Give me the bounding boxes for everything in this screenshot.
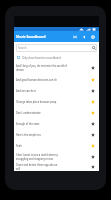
button[interactable]: Shuffle: [70, 31, 79, 42]
staticText: And good human decisions can ch: [16, 78, 89, 81]
staticText: I hate and detest these app ads an will: [16, 163, 89, 171]
button[interactable]: Yeah: [14, 140, 99, 151]
staticText: Only show favorites soundboard: [22, 56, 61, 59]
button[interactable]: Settings: [88, 31, 97, 42]
button[interactable]: Don't underestimate: [14, 107, 99, 118]
button[interactable]: And good human decisions can ch: [14, 74, 99, 85]
button[interactable]: Only show favorites soundboard: [14, 53, 99, 62]
button[interactable]: Change takes place because peop: [14, 96, 99, 107]
staticText: And we can do it: [16, 89, 89, 92]
staticText: Here's the simple tru: [16, 133, 89, 136]
staticText: Movie Soundboard: [16, 35, 46, 39]
staticText: I don't want to see a world where p stru…: [16, 153, 89, 161]
button[interactable]: And I beg of you, do not enter the world…: [14, 62, 99, 74]
button[interactable]: Here's the simple tru: [14, 129, 99, 140]
staticText: Search: [18, 46, 27, 50]
button[interactable]: And we can do it: [14, 85, 99, 96]
staticText: Don't underestimate: [16, 111, 89, 114]
staticText: Yeah: [16, 144, 89, 147]
button[interactable]: I don't want to see a world where p stru…: [14, 151, 99, 163]
button[interactable]: I hate and detest these app ads an will: [14, 163, 99, 171]
button[interactable]: Enough of the smar: [14, 118, 99, 129]
button[interactable]: Search: [16, 44, 97, 52]
staticText: Enough of the smar: [16, 122, 89, 125]
staticText: And I beg of you, do not enter the world…: [16, 64, 89, 72]
button[interactable]: Previous: [79, 31, 88, 42]
staticText: Change takes place because peop: [16, 100, 89, 103]
